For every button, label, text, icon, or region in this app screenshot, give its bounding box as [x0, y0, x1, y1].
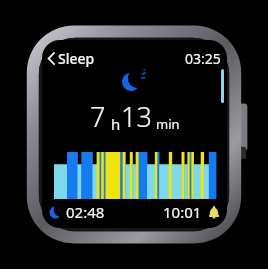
staticText: h — [111, 114, 121, 134]
button[interactable]: Back — [46, 47, 97, 70]
other: Bedtime — [49, 206, 62, 219]
button[interactable]: Bedtime — [49, 202, 105, 222]
staticText: 03:25 — [185, 49, 221, 68]
staticText: Sleep — [58, 49, 95, 68]
staticText: min — [156, 115, 180, 133]
other: Alarm — [208, 206, 220, 219]
button[interactable]: 10:01 — [163, 202, 220, 222]
button[interactable] — [54, 152, 216, 199]
staticText: 7 — [90, 98, 106, 135]
other: Sleep — [122, 69, 148, 91]
staticText: 10:01 — [163, 202, 202, 222]
staticText: 02:48 — [66, 202, 105, 222]
staticText: 13 — [121, 98, 152, 135]
other: Back — [48, 52, 55, 65]
